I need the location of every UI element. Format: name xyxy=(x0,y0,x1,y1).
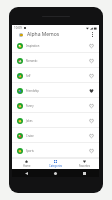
button[interactable]: Back xyxy=(12,169,41,177)
staticText: Funny xyxy=(26,104,34,108)
button[interactable]: Favorite xyxy=(88,117,95,124)
button[interactable]: Favorite xyxy=(88,57,95,64)
button[interactable]: Jokes xyxy=(12,113,99,128)
staticText: Self xyxy=(26,74,31,78)
button[interactable]: Cruise xyxy=(12,128,99,143)
button[interactable]: Romantic xyxy=(12,53,99,68)
button[interactable]: Categories xyxy=(41,158,70,169)
button[interactable]: Favorite xyxy=(88,87,95,94)
staticText: Romantic xyxy=(26,59,38,63)
button[interactable]: Home xyxy=(12,158,41,169)
staticText: Friendship xyxy=(26,89,39,93)
staticText: 10:09 xyxy=(14,26,22,30)
button[interactable]: Sports xyxy=(12,143,99,158)
button[interactable]: Home xyxy=(41,169,70,177)
button[interactable]: Favorite xyxy=(88,42,95,49)
button[interactable]: Favorite xyxy=(88,102,95,109)
button[interactable]: Favorite xyxy=(88,147,95,154)
staticText: Categories xyxy=(49,164,63,168)
button[interactable]: Favorite xyxy=(88,132,95,139)
button[interactable]: Self xyxy=(12,68,99,83)
button[interactable]: Friendship xyxy=(12,83,99,98)
button[interactable]: Profile xyxy=(19,33,23,37)
staticText: Home xyxy=(23,164,31,168)
button[interactable]: Funny xyxy=(12,98,99,113)
staticText: Jokes xyxy=(26,119,33,123)
button[interactable]: Favorite xyxy=(88,72,95,79)
button[interactable]: Inspiration xyxy=(12,38,99,53)
staticText: Alpha Memos xyxy=(27,31,60,38)
staticText: Cruise xyxy=(26,134,34,138)
staticText: Sports xyxy=(26,149,34,153)
button[interactable]: Favorites xyxy=(70,158,99,169)
button[interactable]: Recents xyxy=(70,169,99,177)
staticText: Favorites xyxy=(79,164,91,168)
button[interactable]: More options xyxy=(89,31,96,38)
staticText: Inspiration xyxy=(26,44,40,48)
